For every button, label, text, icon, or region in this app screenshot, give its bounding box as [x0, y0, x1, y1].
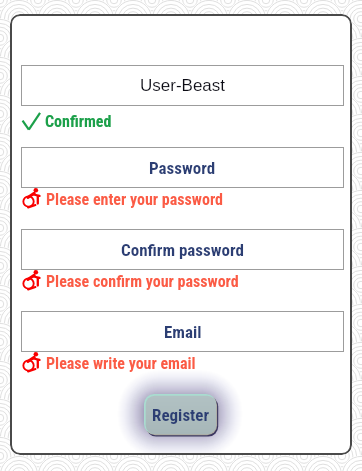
button[interactable]: Register: [146, 396, 216, 434]
other: Error: [23, 270, 40, 290]
other: Error: [23, 188, 40, 208]
staticText: Please write your email: [46, 354, 196, 373]
staticText: Confirm password: [121, 240, 244, 260]
staticText: Please enter your password: [46, 190, 223, 209]
staticText: Email: [164, 322, 202, 342]
button[interactable]: User-Beast: [21, 65, 344, 106]
staticText: Register: [152, 405, 210, 425]
button[interactable]: Email: [21, 311, 344, 352]
other: Error: [23, 352, 40, 372]
button[interactable]: Password: [21, 147, 344, 188]
staticText: Please confirm your password: [46, 272, 239, 291]
button[interactable]: Confirm password: [21, 229, 344, 270]
staticText: User-Beast: [140, 76, 226, 95]
staticText: Confirmed: [45, 112, 112, 131]
staticText: Password: [149, 158, 216, 178]
